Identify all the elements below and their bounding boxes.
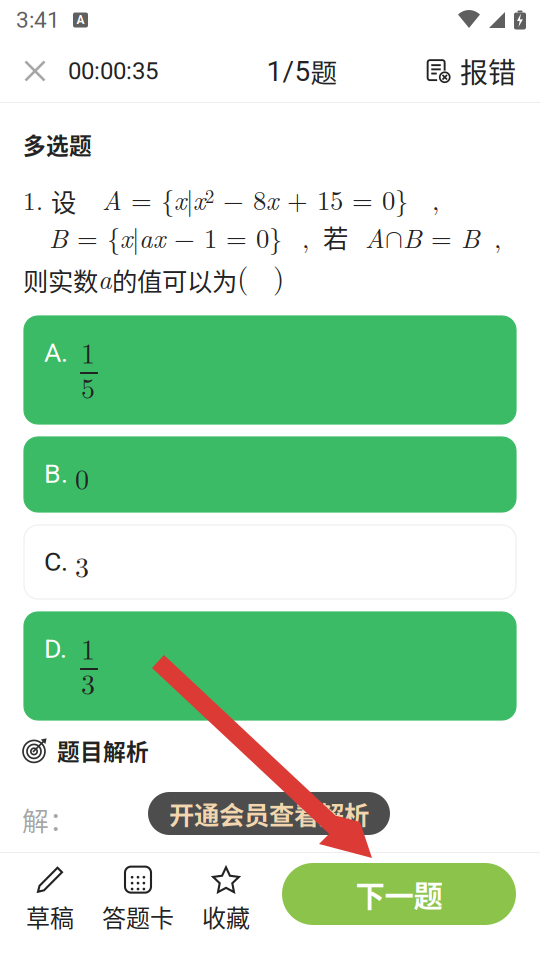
staticText: A. [44,337,68,368]
staticText: 3:41 [16,7,60,33]
button[interactable]: B. [24,437,516,512]
staticText: 开通会员查看解析 [169,795,369,832]
staticText: 1 [81,332,95,372]
staticText: 若 [323,219,348,255]
staticText: 报错 [460,51,516,91]
staticText: 0 [75,458,89,498]
button[interactable]: D. [24,612,516,720]
staticText: 3 [75,546,89,586]
staticText: 5 [81,367,95,407]
button[interactable]: A. [24,316,516,424]
staticText: , [432,180,439,218]
staticText: , [494,218,501,256]
staticText: 收藏 [202,899,250,934]
staticText: 1. 设 [23,182,76,219]
staticText: D. [44,633,67,664]
button[interactable]: 答题卡 [94,857,182,943]
button[interactable]: C. [24,525,516,599]
staticText: 1 [81,628,95,668]
staticText: 1/5题 [266,52,337,90]
staticText: A∩B = B [365,218,480,255]
staticText: 答题卡 [102,899,174,934]
button[interactable]: 草稿 [6,857,94,943]
staticText: 草稿 [26,899,74,934]
staticText: 3 [81,663,95,703]
staticText: 下一题 [355,873,442,915]
staticText: C. [44,546,68,577]
staticText: 则实数a的值可以为( ) [23,256,284,298]
button[interactable]: 00:00:35 [0,40,168,102]
button[interactable]: 开通会员查看解析 [148,792,390,835]
button[interactable]: 下一题 [282,863,516,925]
staticText: 题目解析 [57,734,149,767]
button[interactable]: 收藏 [182,857,270,943]
staticText: 多选题 [23,128,92,161]
button[interactable]: 报错 [416,40,540,102]
staticText: A [76,13,84,27]
staticText: 解： [22,800,76,839]
staticText: B. [44,458,68,489]
staticText: A = {x|x2 − 8x + 15 = 0} [102,180,408,217]
staticText: 00:00:35 [68,57,158,85]
staticText: , [302,218,309,256]
staticText: B = {x|ax − 1 = 0} [49,218,282,255]
